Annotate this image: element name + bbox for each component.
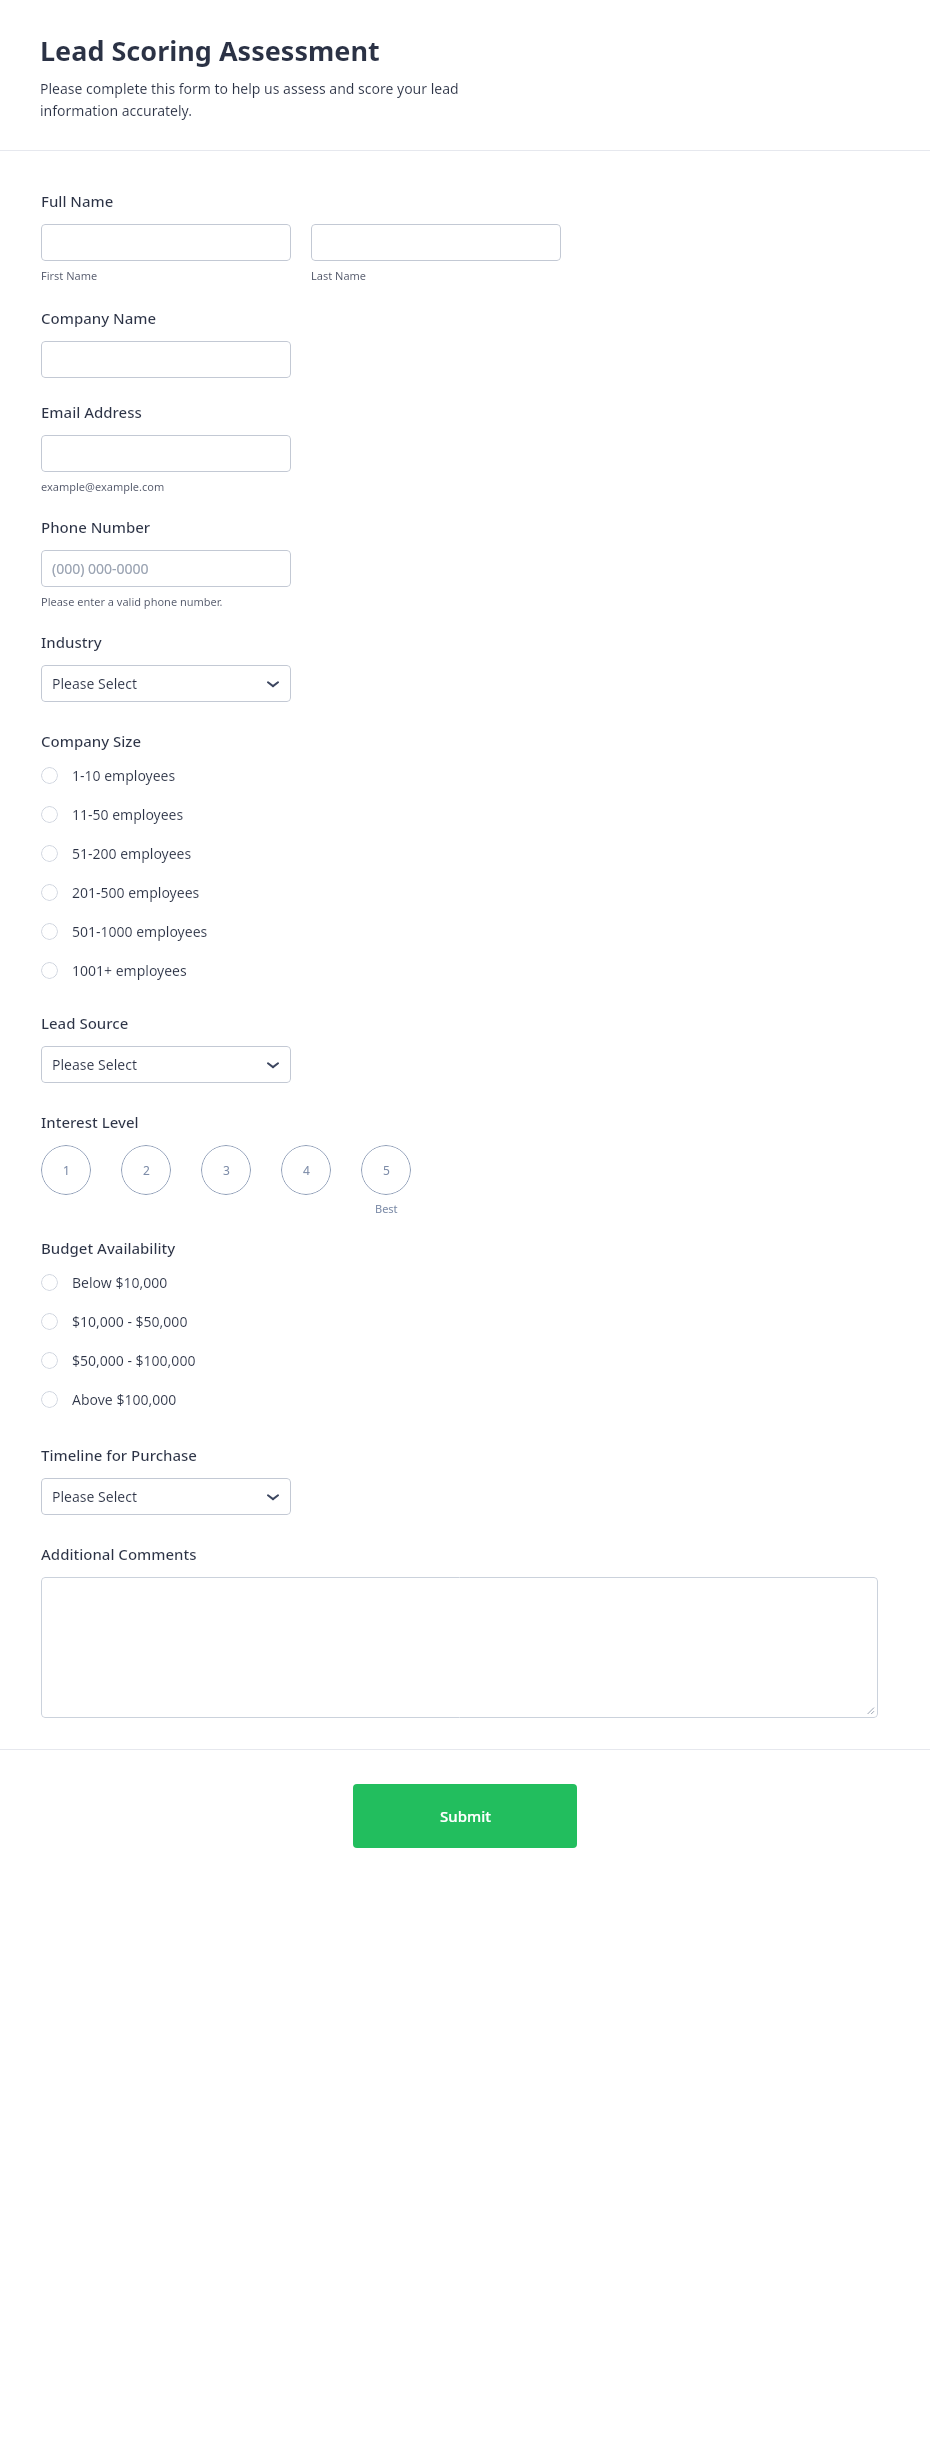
- staticText: Last Name: [311, 268, 367, 283]
- button[interactable]: Please Select: [41, 1046, 291, 1083]
- staticText: Lead Scoring Assessment: [40, 32, 380, 69]
- button[interactable]: Below $10,000: [0, 1263, 930, 1302]
- staticText: 1001+ employees: [72, 961, 187, 980]
- staticText: Phone Number: [41, 517, 151, 537]
- staticText: Budget Availability: [41, 1238, 176, 1258]
- staticText: Company Name: [41, 308, 157, 328]
- other: Open dropdown: [267, 1491, 279, 1503]
- staticText: 201-500 employees: [72, 883, 200, 902]
- staticText: 501-1000 employees: [72, 922, 208, 941]
- staticText: 4: [303, 1162, 310, 1178]
- button[interactable]: 201-500 employees: [0, 873, 930, 912]
- staticText: 5: [383, 1162, 390, 1178]
- staticText: 51-200 employees: [72, 844, 192, 863]
- staticText: (000) 000-0000: [52, 559, 149, 578]
- button[interactable]: [41, 224, 291, 261]
- button[interactable]: Above $100,000: [0, 1380, 930, 1419]
- staticText: Please Select: [52, 1055, 137, 1074]
- staticText: Best: [375, 1201, 398, 1216]
- button[interactable]: 2: [121, 1145, 171, 1195]
- staticText: Please Select: [52, 674, 137, 693]
- other: Open dropdown: [267, 1059, 279, 1071]
- staticText: Please complete this form to help us ass…: [40, 79, 510, 120]
- button[interactable]: [41, 1577, 878, 1718]
- staticText: Timeline for Purchase: [41, 1445, 197, 1465]
- staticText: 11-50 employees: [72, 805, 184, 824]
- staticText: Please Select: [52, 1487, 137, 1506]
- staticText: Above $100,000: [72, 1390, 177, 1409]
- button[interactable]: 11-50 employees: [0, 795, 930, 834]
- staticText: Company Size: [41, 731, 142, 751]
- button[interactable]: 3: [201, 1145, 251, 1195]
- button[interactable]: 501-1000 employees: [0, 912, 930, 951]
- button[interactable]: Please Select: [41, 1478, 291, 1515]
- staticText: Additional Comments: [41, 1544, 197, 1564]
- button[interactable]: 4: [281, 1145, 331, 1195]
- staticText: 1-10 employees: [72, 766, 176, 785]
- staticText: $50,000 - $100,000: [72, 1351, 196, 1370]
- staticText: 1: [63, 1162, 70, 1178]
- staticText: 2: [143, 1162, 150, 1178]
- button[interactable]: $50,000 - $100,000: [0, 1341, 930, 1380]
- staticText: First Name: [41, 268, 311, 283]
- staticText: Full Name: [41, 191, 114, 211]
- staticText: Email Address: [41, 402, 142, 422]
- button[interactable]: $10,000 - $50,000: [0, 1302, 930, 1341]
- staticText: Below $10,000: [72, 1273, 168, 1292]
- button[interactable]: [311, 224, 561, 261]
- button[interactable]: 1: [41, 1145, 91, 1195]
- staticText: 3: [223, 1162, 230, 1178]
- button[interactable]: 1001+ employees: [0, 951, 930, 990]
- staticText: Lead Source: [41, 1013, 129, 1033]
- button[interactable]: 5: [361, 1145, 411, 1195]
- button[interactable]: (000) 000-0000: [41, 550, 291, 587]
- button[interactable]: Please Select: [41, 665, 291, 702]
- staticText: $10,000 - $50,000: [72, 1312, 188, 1331]
- button[interactable]: [41, 341, 291, 378]
- staticText: Submit: [440, 1806, 491, 1826]
- staticText: Please enter a valid phone number.: [41, 594, 223, 609]
- staticText: Industry: [41, 632, 102, 652]
- staticText: example@example.com: [41, 479, 165, 494]
- staticText: Interest Level: [41, 1112, 139, 1132]
- button[interactable]: 1-10 employees: [0, 756, 930, 795]
- button[interactable]: 51-200 employees: [0, 834, 930, 873]
- button[interactable]: Submit: [353, 1784, 577, 1848]
- other: Open dropdown: [267, 678, 279, 690]
- button[interactable]: [41, 435, 291, 472]
